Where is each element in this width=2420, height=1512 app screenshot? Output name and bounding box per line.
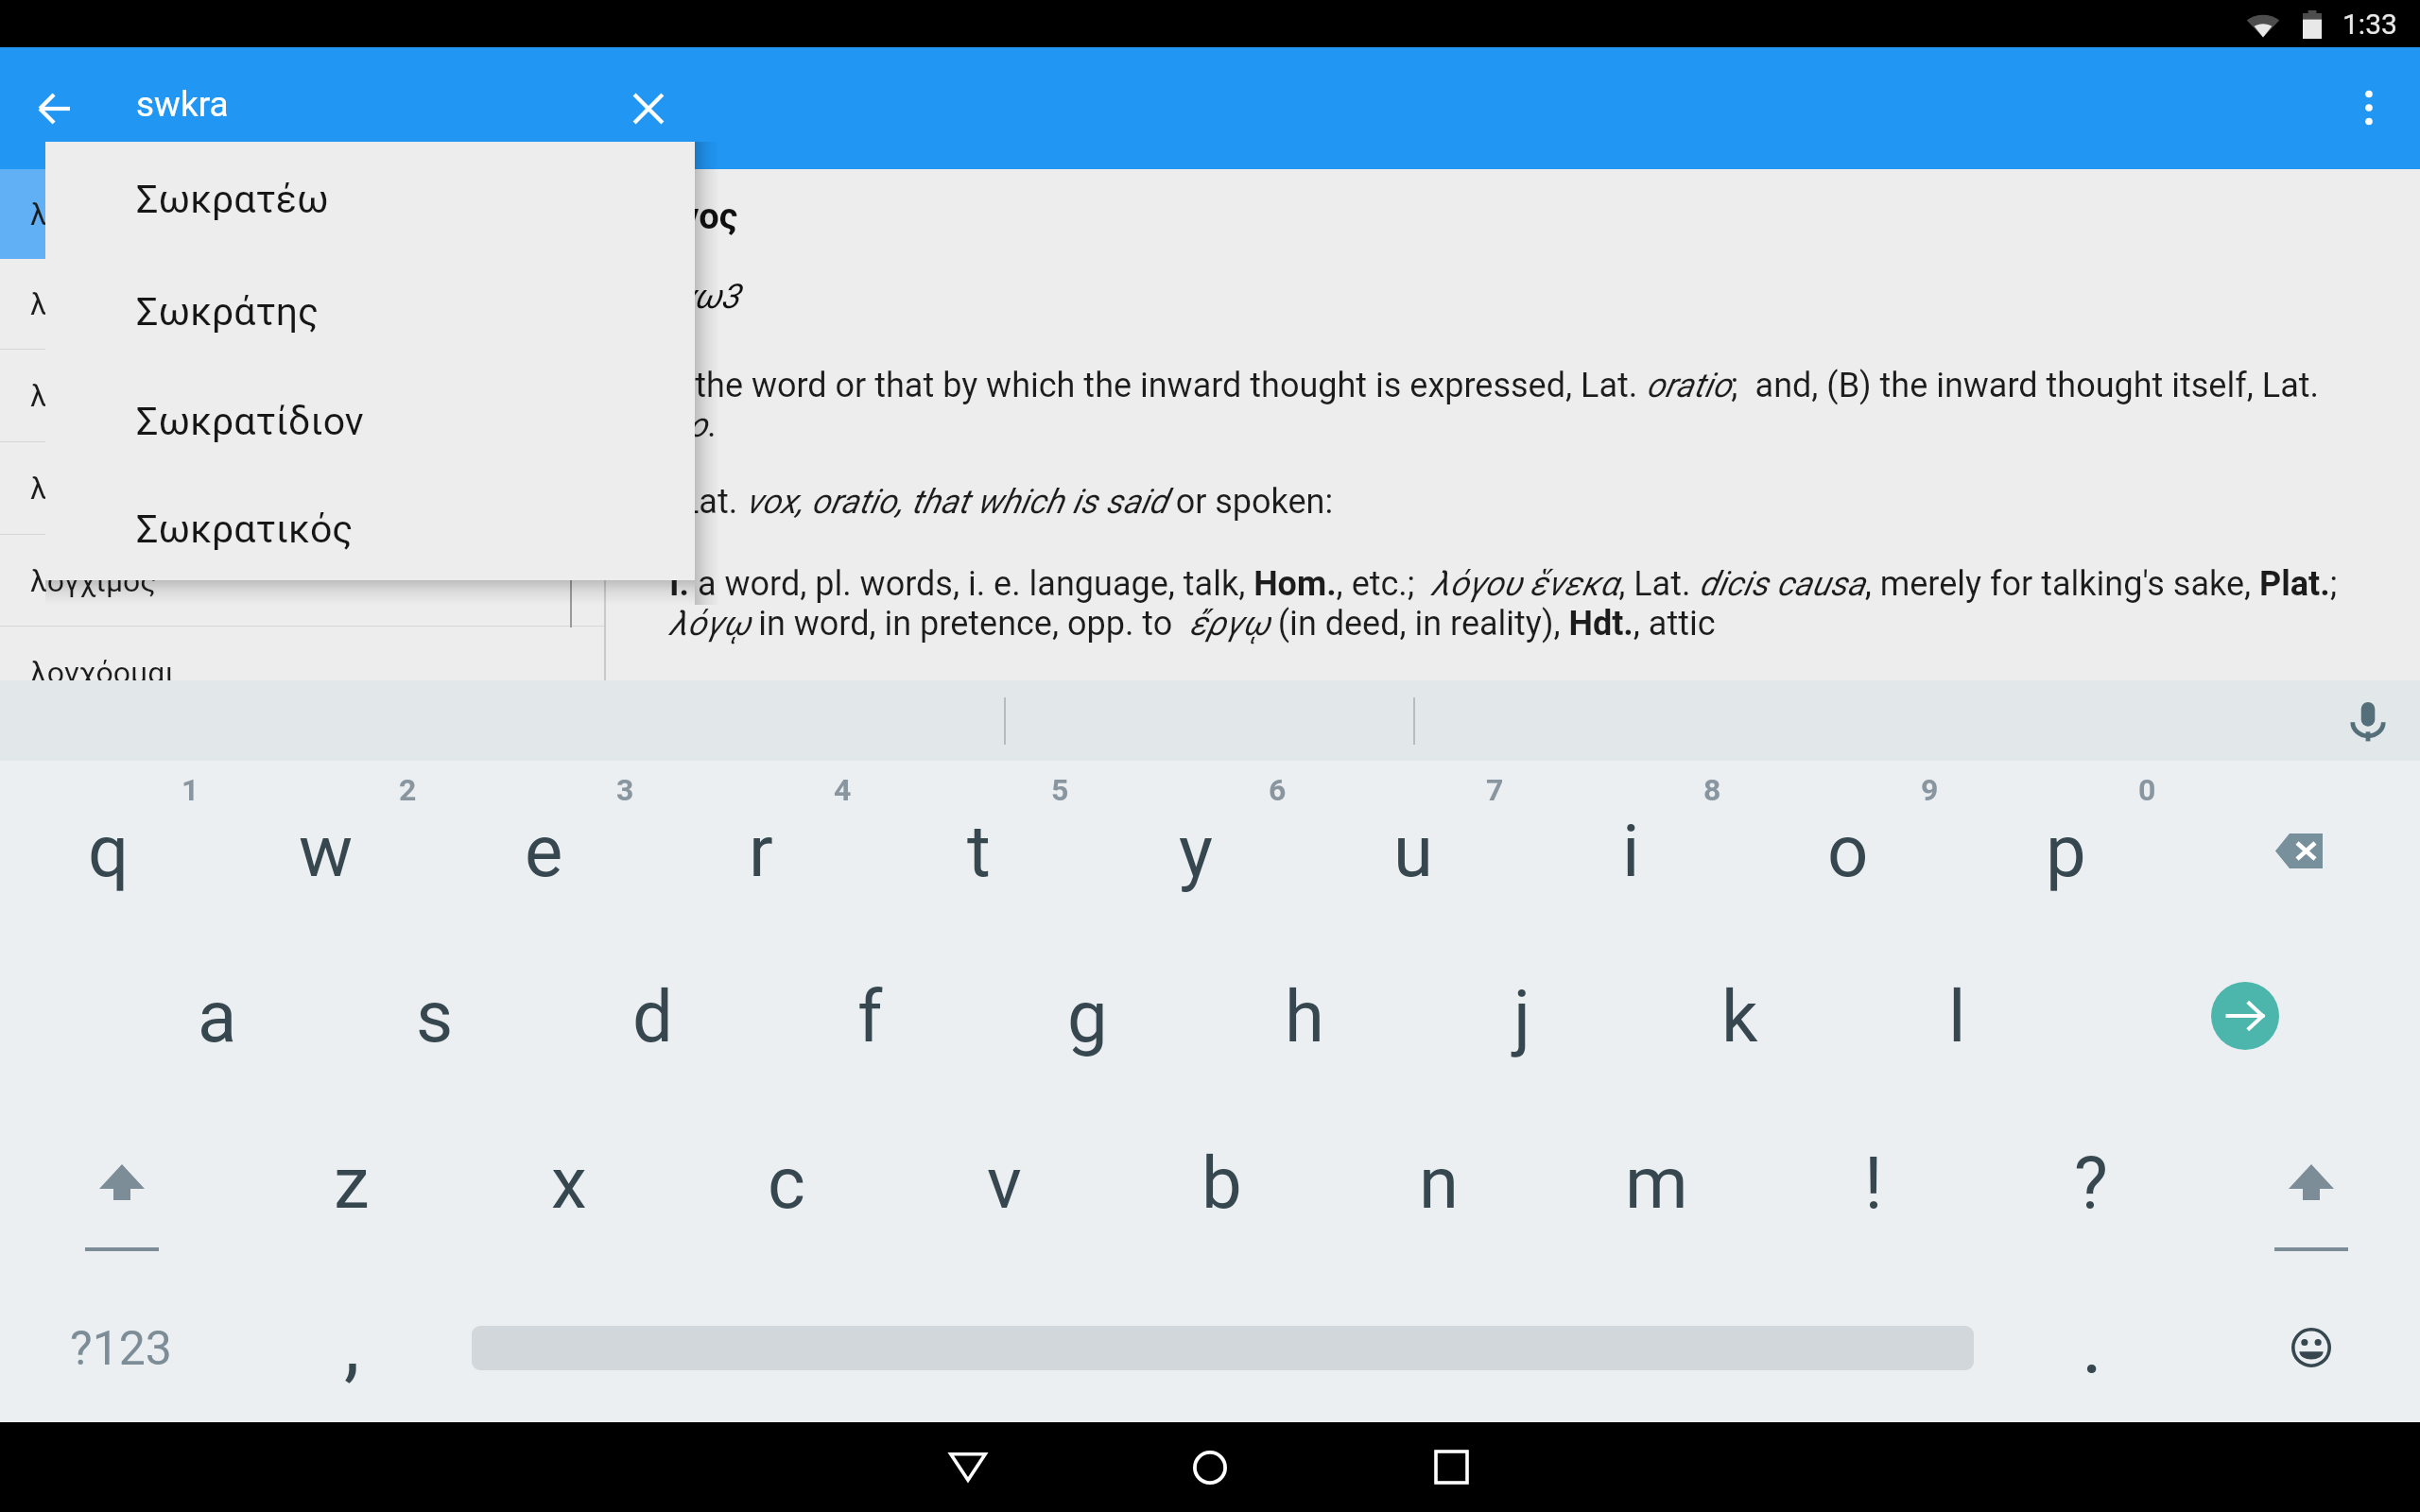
staticText: o bbox=[1827, 809, 1869, 893]
staticText: t bbox=[967, 809, 991, 893]
button[interactable]: z bbox=[244, 1092, 459, 1272]
button[interactable]: o bbox=[1740, 761, 1956, 940]
button[interactable]: Shift bbox=[43, 1111, 201, 1253]
button[interactable]: More options bbox=[2342, 81, 2395, 134]
button[interactable]: p bbox=[1958, 761, 2173, 940]
staticText: 0 bbox=[2138, 772, 2156, 808]
button[interactable]: Clear search bbox=[603, 63, 693, 153]
staticText: u bbox=[1393, 809, 1433, 893]
staticText: λογχήρης bbox=[30, 197, 164, 232]
button[interactable]: λόγχιμος bbox=[0, 535, 604, 627]
staticText: 8 bbox=[1703, 772, 1721, 808]
staticText: . bbox=[2082, 1299, 2103, 1392]
staticText: (A) the word or that by which the inward… bbox=[641, 366, 2354, 445]
button[interactable]: l bbox=[1849, 926, 2065, 1106]
button[interactable]: Voice input bbox=[2342, 694, 2394, 747]
button[interactable]: m bbox=[1548, 1092, 1764, 1272]
button[interactable]: Search bbox=[2193, 926, 2297, 1106]
staticText: Σωκρατέω bbox=[136, 177, 329, 222]
staticText: λογχίζω bbox=[30, 378, 147, 414]
staticText: λογχόομαι bbox=[30, 655, 175, 691]
staticText: g bbox=[1067, 974, 1108, 1058]
staticText: s bbox=[416, 974, 454, 1058]
button[interactable]: a bbox=[110, 926, 325, 1106]
button[interactable]: h bbox=[1197, 926, 1412, 1106]
button[interactable]: t bbox=[871, 761, 1086, 940]
staticText: 2 bbox=[399, 772, 417, 808]
staticText: q bbox=[88, 809, 130, 893]
staticText: f bbox=[857, 974, 883, 1058]
button[interactable]: Back bbox=[911, 1427, 1025, 1507]
button[interactable]: Σωκρατέω bbox=[45, 145, 695, 254]
staticText: λόγος bbox=[641, 196, 738, 238]
button[interactable]: y bbox=[1088, 761, 1304, 940]
button[interactable]: b bbox=[1114, 1092, 1329, 1272]
button[interactable]: e bbox=[436, 761, 651, 940]
button[interactable]: λογχητός bbox=[0, 259, 604, 350]
staticText: , bbox=[344, 1298, 360, 1391]
staticText: 1:33 bbox=[2342, 8, 2397, 41]
staticText: λέγω3 bbox=[641, 277, 740, 317]
button[interactable]: ?123 bbox=[28, 1292, 213, 1405]
button[interactable]: . bbox=[1984, 1288, 2200, 1403]
staticText: n bbox=[1419, 1141, 1459, 1225]
button[interactable]: k bbox=[1632, 926, 1847, 1106]
button[interactable]: n bbox=[1331, 1092, 1547, 1272]
staticText: l bbox=[1948, 974, 1966, 1058]
staticText: a bbox=[198, 974, 237, 1058]
staticText: 7 bbox=[1486, 772, 1504, 808]
staticText: Σωκρατίδιον bbox=[136, 399, 364, 444]
button[interactable]: v bbox=[896, 1092, 1112, 1272]
staticText: c bbox=[768, 1141, 805, 1225]
button[interactable]: Recent apps bbox=[1394, 1427, 1508, 1507]
staticText: swkra bbox=[136, 84, 229, 125]
button[interactable]: i bbox=[1523, 761, 1738, 940]
button[interactable]: Shift bbox=[2232, 1111, 2391, 1253]
staticText: 1 bbox=[181, 772, 199, 808]
staticText: e bbox=[525, 809, 563, 893]
staticText: 5 bbox=[1051, 772, 1069, 808]
staticText: λογχικός bbox=[30, 471, 157, 507]
button[interactable]: λογχόομαι bbox=[0, 627, 604, 718]
staticText: I. a word, pl. words, i. e. language, ta… bbox=[669, 564, 2354, 644]
staticText: A. Lat. vox, oratio, that which is said … bbox=[641, 482, 1334, 522]
button[interactable]: Home bbox=[1153, 1427, 1267, 1507]
button[interactable]: x bbox=[461, 1092, 677, 1272]
staticText: h bbox=[1285, 974, 1324, 1058]
button[interactable]: w bbox=[218, 761, 434, 940]
staticText: y bbox=[1179, 809, 1213, 893]
button[interactable]: Backspace bbox=[2247, 761, 2351, 940]
staticText: λόγχιμος bbox=[30, 563, 157, 599]
button[interactable]: Emoji bbox=[2255, 1292, 2368, 1403]
button[interactable]: q bbox=[1, 761, 216, 940]
button[interactable]: j bbox=[1414, 926, 1630, 1106]
button[interactable]: Σωκρατικός bbox=[45, 474, 695, 584]
button[interactable]: d bbox=[544, 926, 760, 1106]
staticText: d bbox=[632, 974, 673, 1058]
button[interactable]: ? bbox=[1983, 1092, 2199, 1272]
staticText: Σωκρατικός bbox=[136, 507, 354, 552]
button[interactable]: , bbox=[244, 1287, 459, 1402]
button[interactable]: Navigate up bbox=[8, 62, 99, 154]
button[interactable]: r bbox=[653, 761, 869, 940]
button[interactable]: λογχήρης bbox=[0, 169, 604, 259]
staticText: r bbox=[749, 809, 773, 893]
button[interactable]: λογχικός bbox=[0, 442, 604, 535]
staticText: m bbox=[1625, 1141, 1688, 1225]
staticText: 9 bbox=[1921, 772, 1939, 808]
button[interactable]: u bbox=[1305, 761, 1521, 940]
button[interactable]: ! bbox=[1766, 1092, 1981, 1272]
button[interactable]: f bbox=[762, 926, 977, 1106]
button[interactable]: Σωκράτης bbox=[45, 257, 695, 367]
button[interactable]: c bbox=[679, 1092, 894, 1272]
button[interactable]: s bbox=[327, 926, 543, 1106]
button[interactable]: λογχίζω bbox=[0, 350, 604, 442]
button[interactable]: Σωκρατίδιον bbox=[45, 367, 695, 476]
staticText: k bbox=[1721, 974, 1758, 1058]
staticText: Σωκράτης bbox=[136, 289, 320, 335]
staticText: 4 bbox=[834, 772, 852, 808]
staticText: 3 bbox=[616, 772, 634, 808]
staticText: x bbox=[551, 1141, 587, 1225]
button[interactable]: g bbox=[979, 926, 1195, 1106]
